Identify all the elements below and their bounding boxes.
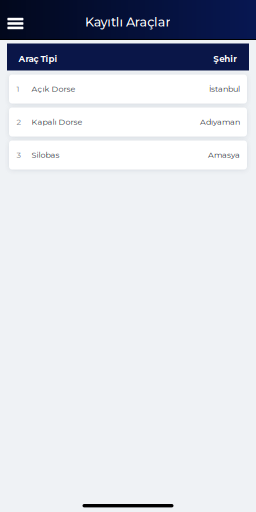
button[interactable]: Menu [0, 1, 36, 39]
staticText: Şehir [213, 54, 237, 64]
button[interactable]: 3 [9, 140, 247, 169]
button[interactable]: 1 [9, 74, 247, 103]
staticText: Amasya [208, 150, 240, 160]
staticText: Kayıtlı Araçlar [85, 14, 170, 30]
staticText: Araç Tipi [18, 54, 57, 64]
staticText: Açık Dorse [31, 84, 75, 94]
button[interactable]: 2 [9, 107, 247, 136]
staticText: Kapalı Dorse [31, 117, 82, 127]
staticText: 3 [16, 150, 21, 160]
staticText: 2 [16, 117, 21, 127]
staticText: İstanbul [209, 84, 240, 94]
staticText: Adıyaman [200, 117, 240, 127]
staticText: Silobas [31, 150, 59, 160]
staticText: 1 [16, 84, 19, 94]
